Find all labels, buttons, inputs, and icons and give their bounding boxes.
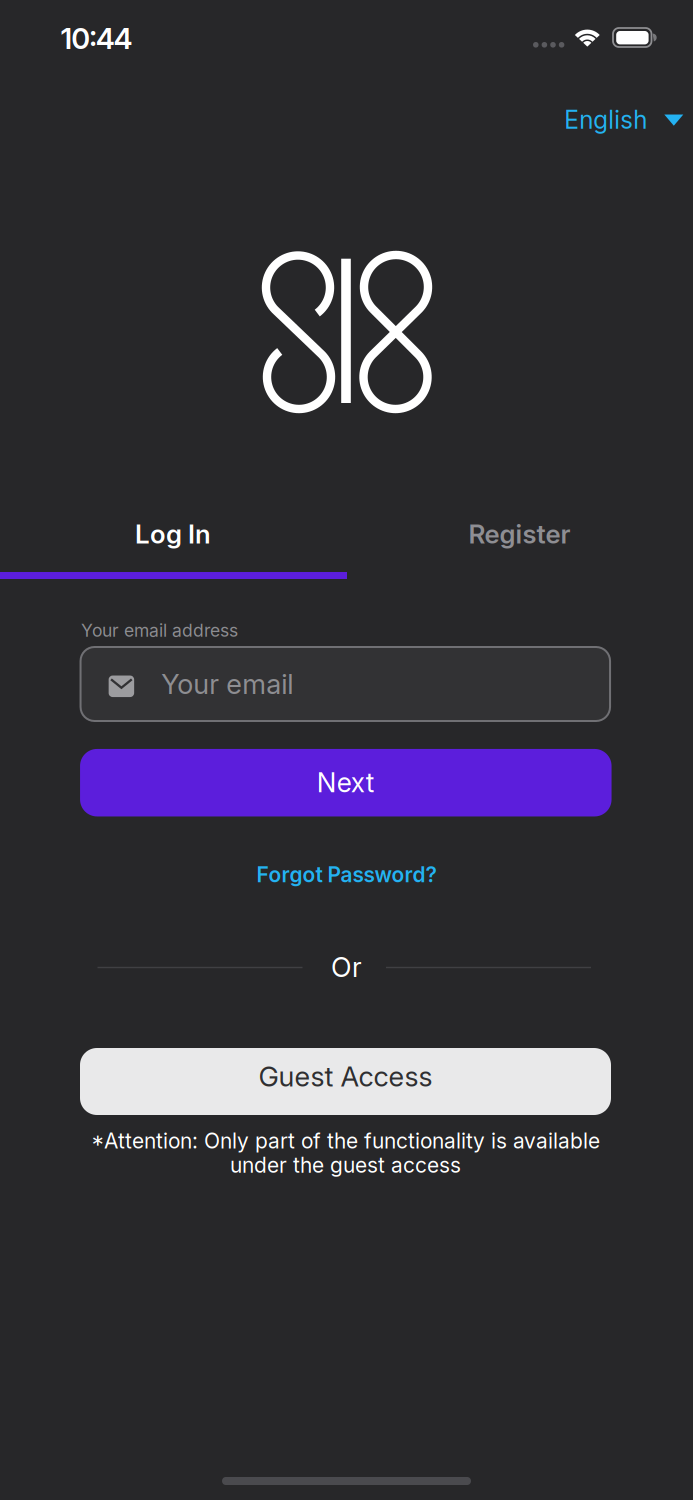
staticText: Guest Access [258, 1060, 432, 1093]
button[interactable]: Your email [81, 647, 610, 721]
button[interactable]: Next [80, 749, 612, 816]
button[interactable]: Log In [0, 489, 346, 579]
staticText: Register [468, 518, 570, 550]
staticText: Your email address [81, 620, 238, 641]
button[interactable]: Guest Access [80, 1048, 611, 1115]
staticText: *Attention: Only part of the functionali… [91, 1128, 600, 1153]
button[interactable]: Forgot Password? [256, 862, 436, 887]
staticText: Forgot Password? [256, 862, 436, 887]
staticText: English [564, 105, 647, 135]
staticText: Log In [135, 518, 211, 550]
button[interactable]: English [564, 105, 682, 135]
staticText: Next [317, 767, 375, 799]
button[interactable]: Register [346, 489, 692, 579]
staticText: Or [331, 951, 362, 984]
staticText: Your email [161, 667, 293, 701]
staticText: under the guest access [230, 1152, 461, 1178]
staticText: 10:44 [60, 21, 133, 56]
